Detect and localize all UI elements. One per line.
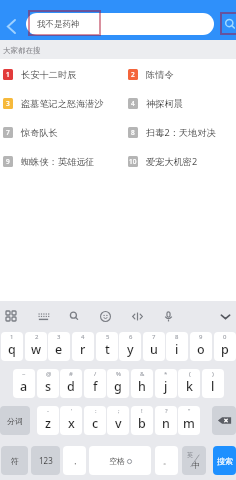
button[interactable]: % [107,369,129,398]
button[interactable] [26,13,214,35]
button[interactable]: Voice input [155,303,181,329]
button[interactable]: 10 [125,147,236,176]
staticText: l [211,378,215,395]
staticText: - [47,407,49,415]
staticText: d [67,378,75,395]
button[interactable]: Back [0,15,22,37]
button[interactable]: 。 [155,446,178,475]
button[interactable]: 5 [96,332,118,361]
staticText: 1 [6,70,10,79]
button[interactable]: 1 [1,332,23,361]
staticText: 3 [57,333,61,341]
staticText: ' [71,407,73,415]
button[interactable]: 123 [31,446,60,475]
button[interactable]: 2 [25,332,47,361]
button[interactable]: 8 [166,332,188,361]
button[interactable]: 3 [0,89,125,118]
button[interactable]: Search [61,303,87,329]
button[interactable]: 分词 [0,406,30,435]
button[interactable]: ~ [13,369,35,398]
button[interactable]: - [37,406,59,435]
staticText: 0 [223,333,227,341]
staticText: 神探柯晨 [146,98,183,110]
button[interactable]: Move cursor [124,303,150,329]
staticText: ( [189,370,191,378]
button[interactable]: # [60,369,82,398]
staticText: 4 [131,99,135,108]
staticText: 8 [175,333,179,341]
staticText: 7 [152,333,156,341]
staticText: s [45,378,52,395]
staticText: k [186,378,193,395]
staticText: 符 [11,456,19,466]
staticText: 搜索 [217,456,233,466]
staticText: ~ [22,370,26,378]
button[interactable]: ' [60,406,82,435]
button[interactable]: ? [155,406,177,435]
staticText: % [116,370,121,378]
staticText: 8 [131,128,135,137]
button[interactable]: 6 [119,332,141,361]
staticText: e [55,341,63,358]
staticText: 惊奇队长 [21,127,58,139]
button[interactable]: 搜索 [213,446,236,475]
staticText: 中 [192,460,200,470]
button[interactable]: 7 [143,332,165,361]
button[interactable]: / [84,369,106,398]
staticText: / [94,370,97,378]
button[interactable]: Backspace [212,406,236,435]
button[interactable]: Chinese English toggle [182,446,206,475]
staticText: 空格 [109,456,125,466]
button[interactable]: 9 [0,147,125,176]
button[interactable]: 8 [125,118,236,147]
button[interactable]: 空格 [89,446,151,475]
staticText: 10 [129,157,137,166]
button[interactable]: ( [178,369,200,398]
button[interactable]: ; [107,406,129,435]
staticText: q [8,341,16,358]
button[interactable]: 4 [125,89,236,118]
staticText: 英 [187,451,193,459]
button[interactable]: 2 [125,60,236,89]
staticText: f [93,378,98,395]
staticText: o [197,341,205,358]
button[interactable]: Hide keyboard [212,303,236,329]
button[interactable]: ! [131,406,153,435]
button[interactable]: 符 [1,446,28,475]
staticText: 。 [163,456,171,466]
button[interactable]: ， [63,446,86,475]
staticText: 盗墓笔记之怒海潜沙 [21,98,104,110]
button[interactable]: Keyboard layout [30,303,56,329]
button[interactable]: 9 [190,332,212,361]
button[interactable]: & [131,369,153,398]
button[interactable]: : [84,406,106,435]
staticText: ) [212,370,214,378]
staticText: ; [118,407,120,415]
staticText: & [140,370,145,378]
button[interactable]: Search [220,12,236,35]
staticText: p [221,341,229,358]
staticText: i [175,341,179,358]
button[interactable]: 4 [72,332,94,361]
button[interactable]: ) [202,369,224,398]
staticText: 长安十二时辰 [21,69,77,81]
button[interactable]: Emoji [92,303,118,329]
staticText: 蜘蛛侠：英雄远征 [21,156,95,168]
button[interactable]: " [178,406,200,435]
button[interactable]: 7 [0,118,125,147]
button[interactable]: 1 [0,60,125,89]
button[interactable]: Apps [0,303,24,329]
staticText: # [69,370,73,378]
staticText: 大家都在搜 [3,46,41,55]
button[interactable]: @ [37,369,59,398]
staticText: * [164,370,168,378]
staticText: 7 [6,128,10,137]
button[interactable]: * [155,369,177,398]
staticText: w [31,341,42,358]
staticText: x [68,415,75,432]
button[interactable]: 0 [214,332,236,361]
button[interactable]: 3 [48,332,70,361]
staticText: a [20,378,28,395]
staticText: 9 [6,157,10,166]
button[interactable]: 我不是药神 [28,10,101,36]
